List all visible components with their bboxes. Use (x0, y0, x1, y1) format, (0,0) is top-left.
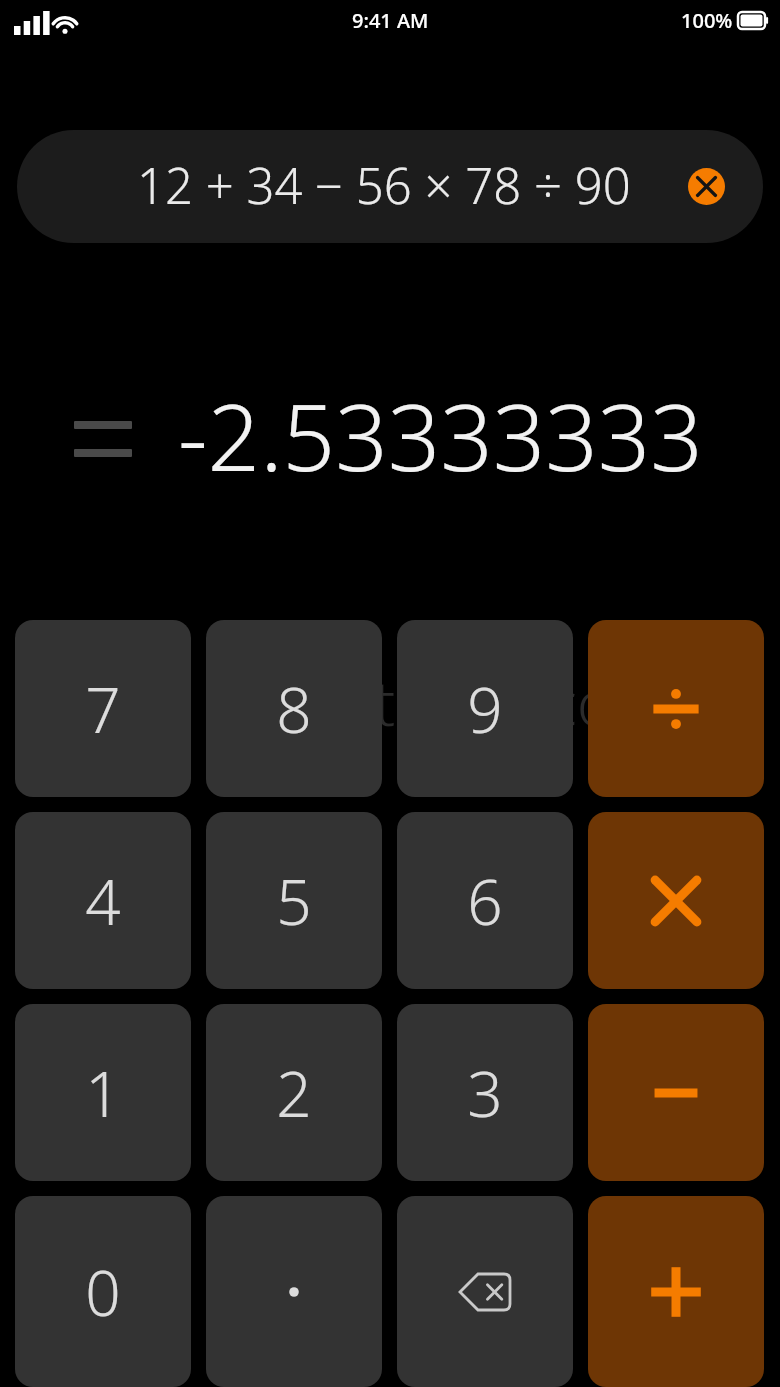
staticText: 2 (276, 1051, 312, 1135)
button[interactable]: Subtract (588, 1004, 764, 1181)
staticText: 7 (85, 667, 121, 751)
button[interactable]: 0 (15, 1196, 191, 1387)
button[interactable]: 9 (397, 620, 573, 797)
staticText: 3 (467, 1051, 503, 1135)
staticText: 1 (85, 1051, 121, 1135)
button[interactable]: Multiply (588, 812, 764, 989)
button[interactable]: Divide (588, 620, 764, 797)
button[interactable]: 2 (206, 1004, 382, 1181)
button[interactable]: Clear (688, 168, 725, 205)
button[interactable]: Backspace (397, 1196, 573, 1387)
staticText: 8 (276, 667, 312, 751)
staticText: 6 (467, 859, 503, 943)
staticText: UpdateStar.com (222, 660, 669, 744)
staticText: 12 + 34 − 56 × 78 ÷ 90 (137, 152, 631, 219)
button[interactable]: 8 (206, 620, 382, 797)
button[interactable]: 3 (397, 1004, 573, 1181)
staticText: -2.53333333 (178, 373, 703, 498)
staticText: 4 (85, 859, 121, 943)
staticText: 5 (276, 859, 312, 943)
staticText: 9 (467, 667, 503, 751)
staticText: 0 (85, 1250, 121, 1334)
button[interactable]: 12 + 34 − 56 × 78 ÷ 90 (17, 130, 763, 243)
button[interactable]: 1 (15, 1004, 191, 1181)
button[interactable]: 4 (15, 812, 191, 989)
button[interactable]: 5 (206, 812, 382, 989)
staticText: 9:41 AM (352, 7, 429, 34)
button[interactable]: Decimal point (206, 1196, 382, 1387)
staticText: 100% (681, 7, 733, 34)
button[interactable]: 7 (15, 620, 191, 797)
button[interactable]: 6 (397, 812, 573, 989)
button[interactable]: Add (588, 1196, 764, 1387)
